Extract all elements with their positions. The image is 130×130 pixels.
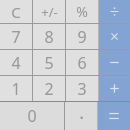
button[interactable]: Equals xyxy=(98,102,130,130)
button[interactable]: 4 xyxy=(0,50,32,75)
button[interactable]: 0 xyxy=(0,102,64,130)
button[interactable]: 5 xyxy=(33,50,65,75)
staticText: 8 xyxy=(44,26,54,48)
staticText: 5 xyxy=(44,52,54,74)
button[interactable]: 8 xyxy=(33,24,65,49)
staticText: 1 xyxy=(11,78,21,100)
button[interactable]: Plus xyxy=(99,76,130,101)
button[interactable]: 9 xyxy=(66,24,98,49)
staticText: 3 xyxy=(77,78,87,100)
staticText: C xyxy=(11,2,21,22)
button[interactable]: Minus xyxy=(99,50,130,75)
staticText: +/- xyxy=(41,3,58,21)
button[interactable]: 1 xyxy=(0,76,32,101)
button[interactable]: +/- xyxy=(33,0,65,23)
staticText: 7 xyxy=(11,26,21,48)
staticText: 6 xyxy=(77,52,87,74)
button[interactable]: Multiply xyxy=(99,24,130,49)
button[interactable]: 3 xyxy=(66,76,98,101)
staticText: 4 xyxy=(11,52,21,74)
button[interactable]: % xyxy=(66,0,98,23)
button[interactable]: 2 xyxy=(33,76,65,101)
button[interactable]: C xyxy=(0,0,32,23)
button[interactable]: 6 xyxy=(66,50,98,75)
button[interactable]: Decimal point xyxy=(65,102,97,130)
button[interactable]: 7 xyxy=(0,24,32,49)
button[interactable]: Divide xyxy=(99,0,130,23)
staticText: 2 xyxy=(44,78,54,100)
staticText: 0 xyxy=(17,105,47,127)
staticText: 9 xyxy=(77,26,87,48)
staticText: % xyxy=(76,2,88,21)
